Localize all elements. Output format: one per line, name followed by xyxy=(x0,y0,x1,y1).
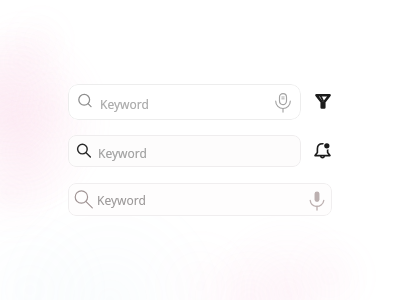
staticText: Keyword xyxy=(98,145,147,161)
button[interactable]: Keyword xyxy=(68,183,332,216)
staticText: Keyword xyxy=(100,96,149,112)
button[interactable]: Voice search xyxy=(270,90,296,116)
button[interactable]: Keyword xyxy=(68,84,301,120)
button[interactable]: Filter xyxy=(315,93,331,109)
button[interactable]: Keyword xyxy=(68,135,301,167)
button[interactable]: Notifications xyxy=(314,142,331,159)
button[interactable]: Voice search xyxy=(305,189,329,213)
staticText: Keyword xyxy=(97,192,146,208)
